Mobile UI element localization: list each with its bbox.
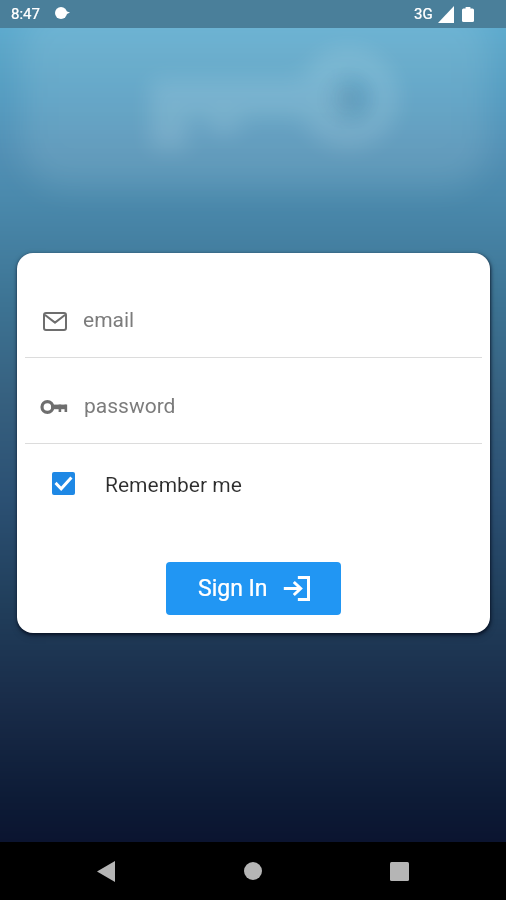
button[interactable]: Remember me checkbox (52, 472, 75, 495)
staticText: Sign In (198, 575, 268, 602)
staticText: email (83, 308, 135, 333)
button[interactable]: Recent apps (370, 842, 428, 900)
button[interactable]: Remember me checkbox (17, 462, 490, 508)
staticText: password (84, 394, 176, 419)
button[interactable]: email (17, 253, 490, 357)
button[interactable]: Back (77, 842, 135, 900)
button[interactable]: Sign In (166, 562, 341, 615)
staticText: 3G (414, 5, 433, 23)
button[interactable]: password (17, 358, 490, 443)
button[interactable]: Home (224, 842, 282, 900)
staticText: 8:47 (11, 5, 40, 23)
staticText: Remember me (105, 473, 242, 498)
